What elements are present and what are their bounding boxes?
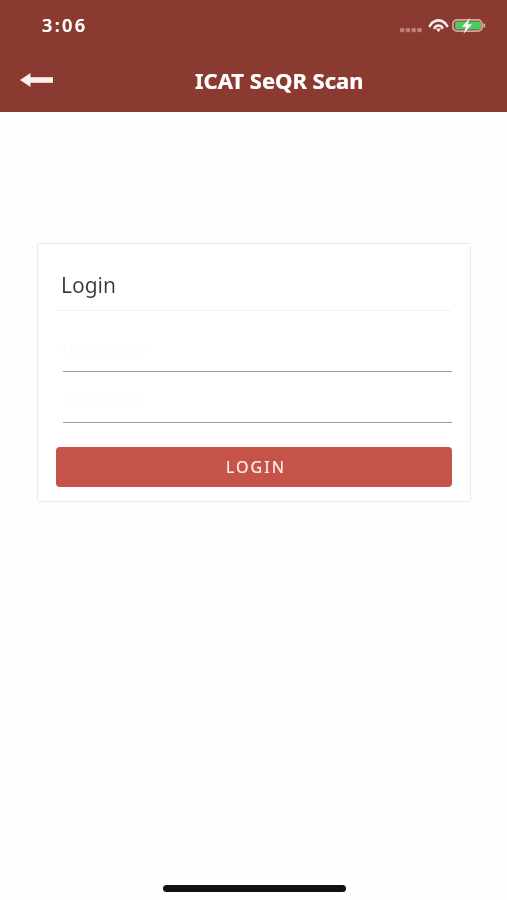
other: Battery charging (452, 19, 485, 32)
staticText: LOGIN (226, 456, 286, 478)
button[interactable]: Back (12, 56, 60, 104)
button[interactable]: LOGIN (56, 447, 452, 487)
staticText: Login (61, 271, 117, 300)
staticText: ICAT SeQR Scan (195, 65, 364, 95)
other: Mobile signal (400, 28, 423, 33)
button[interactable]: User Name (57, 331, 453, 372)
other: Wi-Fi (428, 19, 449, 32)
button[interactable]: Password (57, 382, 453, 423)
staticText: 3:06 (42, 13, 88, 38)
